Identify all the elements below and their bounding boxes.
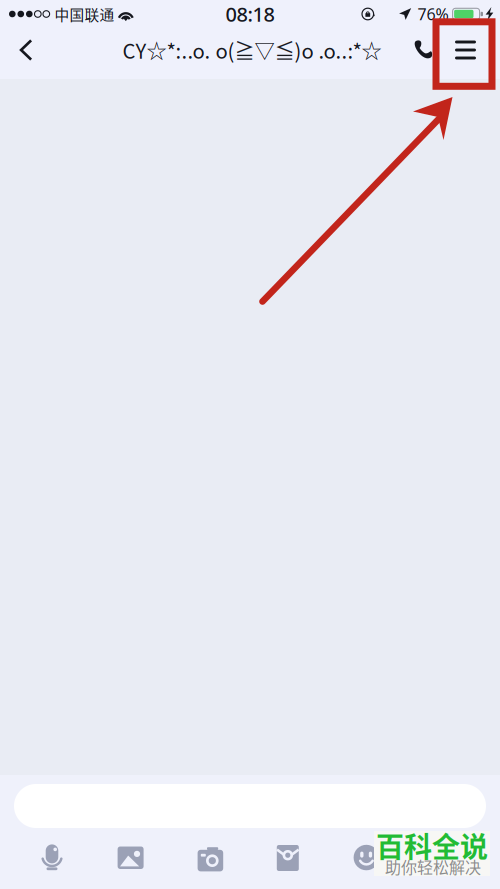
button[interactable]: Voice message [38,844,66,872]
button[interactable]: Back [4,28,48,72]
button[interactable]: Photos [117,844,145,872]
button[interactable]: Camera [195,844,223,872]
staticText: 助你轻松解决 [385,855,481,878]
button[interactable]: Red packet [274,844,302,872]
staticText: CY☆*:..o. o(≧▽≦)o .o..:*☆ [122,35,381,65]
button[interactable]: Menu [443,28,487,72]
staticText: 76% [418,3,449,25]
staticText: 08:18 [225,1,274,27]
button[interactable]: Stickers [352,844,380,872]
button[interactable]: Call [403,28,443,72]
button[interactable]: Message input [0,779,500,833]
staticText: 百科全说 [376,825,488,865]
staticText: 中国联通 [55,3,115,25]
